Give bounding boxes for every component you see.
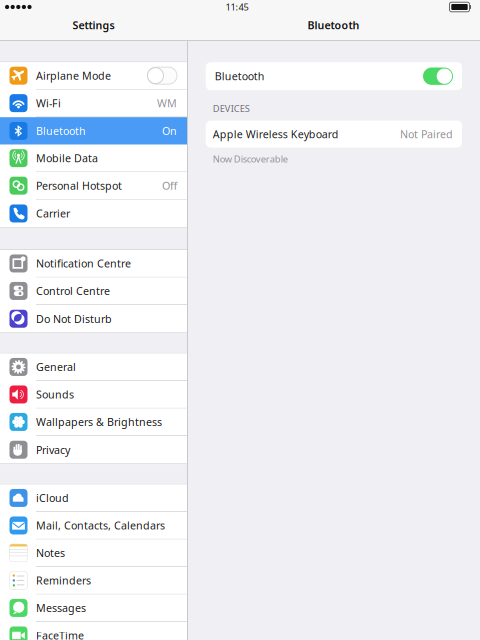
staticText: Off: [162, 179, 177, 193]
staticText: Sounds: [36, 387, 74, 402]
button[interactable]: Privacy: [0, 436, 187, 463]
button[interactable]: FaceTime: [0, 622, 187, 640]
staticText: Privacy: [36, 443, 70, 457]
staticText: Bluetooth: [36, 124, 86, 138]
staticText: DEVICES: [213, 102, 250, 115]
staticText: Settings: [72, 18, 114, 32]
button[interactable]: Personal Hotspot: [0, 172, 187, 200]
staticText: Wi-Fi: [36, 96, 61, 110]
button[interactable]: Bluetooth: [206, 62, 462, 90]
staticText: Mobile Data: [36, 151, 98, 165]
staticText: Reminders: [36, 573, 91, 588]
staticText: 11:45: [226, 1, 249, 13]
staticText: Wallpapers & Brightness: [36, 415, 162, 429]
staticText: iCloud: [36, 491, 69, 505]
staticText: Carrier: [36, 206, 70, 221]
staticText: Airplane Mode: [36, 69, 111, 83]
staticText: On: [162, 124, 177, 138]
staticText: Mail, Contacts, Calendars: [36, 518, 165, 533]
button[interactable]: Control Centre: [0, 277, 187, 305]
staticText: Notes: [36, 546, 65, 560]
staticText: Control Centre: [36, 284, 110, 298]
staticText: Bluetooth: [307, 18, 359, 32]
staticText: Not Paired: [400, 127, 453, 141]
button[interactable]: Apple Wireless Keyboard: [206, 121, 462, 148]
button[interactable]: Sounds: [0, 381, 187, 408]
button[interactable]: Notification Centre: [0, 250, 187, 277]
button[interactable]: Messages: [0, 594, 187, 622]
staticText: Apple Wireless Keyboard: [213, 127, 339, 141]
button[interactable]: Airplane Mode: [0, 62, 187, 90]
button[interactable]: Mobile Data: [0, 145, 187, 172]
button[interactable]: Do Not Disturb: [0, 305, 187, 332]
staticText: Now Discoverable: [213, 153, 288, 165]
staticText: General: [36, 360, 76, 374]
staticText: Do Not Disturb: [36, 312, 112, 326]
staticText: WM: [157, 96, 177, 110]
button[interactable]: General: [0, 353, 187, 381]
button[interactable]: Reminders: [0, 567, 187, 594]
staticText: FaceTime: [36, 628, 84, 640]
staticText: Personal Hotspot: [36, 179, 122, 193]
button[interactable]: Wi-Fi: [0, 90, 187, 117]
staticText: Notification Centre: [36, 256, 131, 271]
button[interactable]: iCloud: [0, 484, 187, 512]
staticText: Bluetooth: [215, 69, 265, 83]
button[interactable]: Bluetooth: [0, 117, 187, 145]
button[interactable]: Wallpapers & Brightness: [0, 408, 187, 436]
button[interactable]: Carrier: [0, 200, 187, 227]
staticText: Messages: [36, 601, 86, 615]
button[interactable]: Notes: [0, 539, 187, 567]
button[interactable]: Mail, Contacts, Calendars: [0, 512, 187, 539]
